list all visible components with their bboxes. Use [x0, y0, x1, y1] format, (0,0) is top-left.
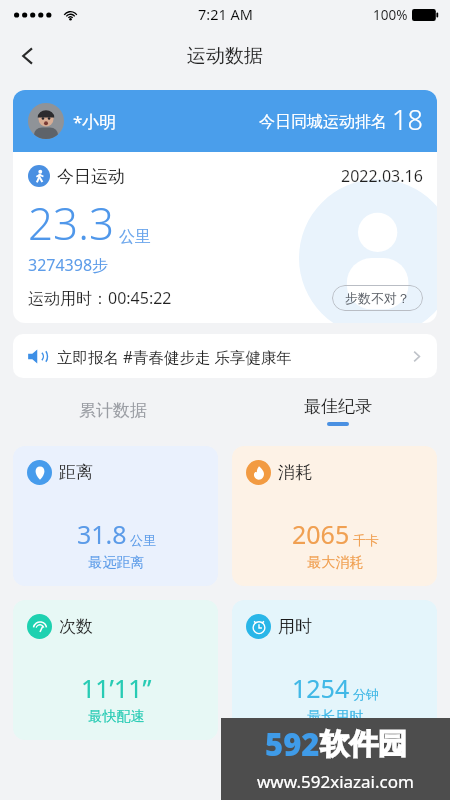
staticText: 软件园 [320, 726, 407, 763]
staticText: 592 [265, 723, 320, 765]
staticText: 运动数据 [187, 44, 263, 68]
staticText: 2022.03.16 [341, 165, 423, 187]
staticText: 公里 [119, 227, 151, 247]
staticText: www.592xiazai.com [257, 770, 414, 793]
staticText: 今日运动 [57, 166, 125, 187]
staticText: 最佳纪录 [304, 396, 372, 417]
staticText: 100% [373, 6, 408, 24]
staticText: 3274398步 [28, 254, 109, 276]
button[interactable]: 用时 [232, 600, 437, 740]
staticText: 运动用时：00:45:22 [28, 287, 172, 309]
staticText: 用时 [278, 616, 312, 637]
staticText: 消耗 [278, 462, 312, 483]
staticText: 分钟 [353, 686, 379, 702]
button[interactable]: 立即报名 #青春健步走 乐享健康年 [13, 334, 437, 378]
staticText: 23.3 [28, 193, 115, 253]
button[interactable]: 消耗 [232, 446, 437, 586]
staticText: 1254 [292, 671, 350, 705]
button[interactable]: 距离 [13, 446, 218, 586]
staticText: 11’11” [81, 671, 152, 705]
staticText: 千卡 [353, 532, 379, 548]
button[interactable]: 步数不对？ [332, 285, 423, 311]
staticText: 7:21 AM [198, 4, 253, 24]
button[interactable]: 累计数据 [0, 396, 225, 425]
staticText: 最大消耗 [246, 554, 425, 572]
staticText: 最远距离 [27, 554, 206, 572]
button[interactable]: *小明 [13, 90, 437, 152]
staticText: 累计数据 [79, 400, 147, 421]
staticText: 今日同城运动排名 [259, 112, 387, 132]
staticText: 最快配速 [27, 708, 206, 726]
button[interactable]: 次数 [13, 600, 218, 740]
staticText: 立即报名 #青春健步走 乐享健康年 [57, 346, 293, 367]
button[interactable]: Back [6, 34, 50, 78]
staticText: 18 [392, 101, 423, 138]
staticText: 次数 [59, 616, 93, 637]
staticText: 最长用时 [246, 708, 425, 726]
staticText: 步数不对？ [345, 290, 410, 306]
staticText: 公里 [130, 532, 156, 548]
staticText: 2065 [292, 517, 350, 551]
staticText: 距离 [59, 462, 93, 483]
staticText: 31.8 [77, 517, 127, 551]
button[interactable]: 最佳纪录 [225, 396, 450, 426]
staticText: *小明 [73, 110, 117, 133]
